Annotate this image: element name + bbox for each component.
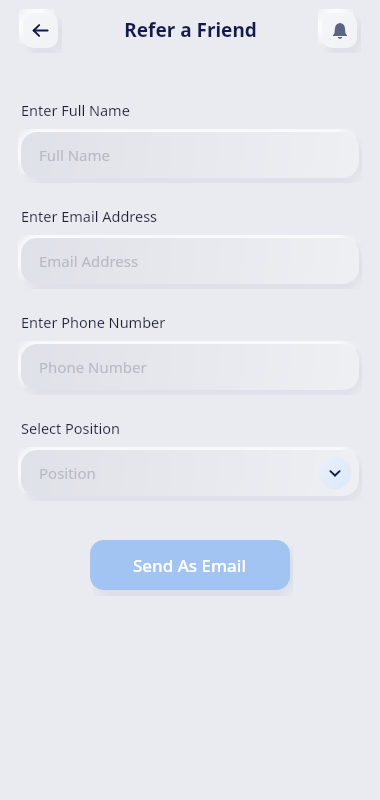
staticText: Enter Full Name [21, 100, 130, 120]
staticText: Position [39, 463, 319, 483]
staticText: Select Position [21, 418, 120, 438]
staticText: Enter Email Address [21, 206, 158, 226]
button[interactable]: Open position list [319, 457, 351, 489]
staticText: Email Address [39, 251, 351, 271]
button[interactable]: Full Name [21, 132, 359, 178]
staticText: Full Name [39, 145, 351, 165]
button[interactable]: Phone Number [21, 344, 359, 390]
staticText: Phone Number [39, 357, 351, 377]
button[interactable]: Send As Email [90, 540, 290, 590]
staticText: Send As Email [133, 554, 247, 577]
staticText: Enter Phone Number [21, 312, 166, 332]
staticText: Refer a Friend [124, 17, 257, 43]
button[interactable]: Position [21, 450, 359, 496]
button[interactable]: Email Address [21, 238, 359, 284]
button[interactable]: Back [23, 13, 58, 48]
button[interactable]: Notifications [322, 13, 357, 48]
